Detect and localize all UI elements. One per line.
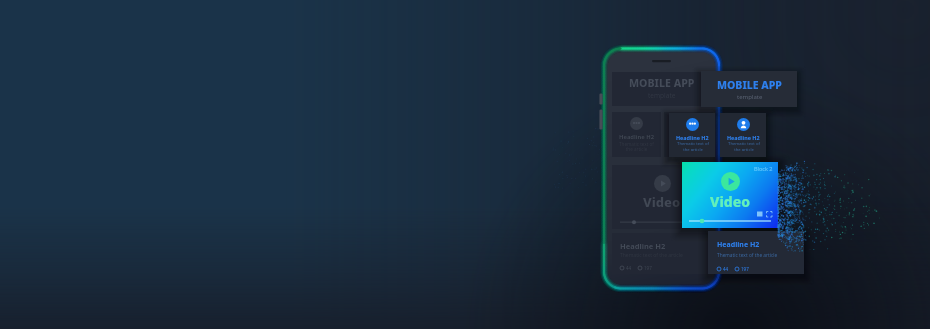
button[interactable]: MOBILE APP <box>612 72 712 106</box>
button[interactable]: Comments <box>669 113 715 157</box>
button[interactable]: Block 2 <box>682 162 778 228</box>
staticText: Thematic text of the article <box>677 141 709 152</box>
staticText: Thematic text of the article <box>728 141 760 152</box>
staticText: 44 <box>723 266 729 272</box>
staticText: Headline H2 <box>620 241 666 251</box>
staticText: Headline H2 <box>717 240 760 250</box>
button[interactable]: Video <box>612 165 712 229</box>
staticText: Video <box>710 192 750 211</box>
other: Comments <box>686 118 699 131</box>
staticText: Headline H2 <box>676 134 709 141</box>
staticText: Headline H2 <box>671 133 706 141</box>
staticText: template <box>648 91 676 100</box>
staticText: Block 2 <box>754 165 773 172</box>
other: Fullscreen <box>757 210 773 218</box>
button[interactable]: Profile <box>720 113 766 157</box>
staticText: Thematic text of the article <box>717 252 778 259</box>
staticText: Headline H2 <box>619 133 654 141</box>
staticText: MOBILE APP <box>629 76 695 90</box>
staticText: Headline H2 <box>727 134 760 141</box>
button[interactable]: Headline H2 <box>664 112 713 157</box>
button[interactable]: Headline H2 <box>708 231 804 274</box>
other: Profile <box>737 118 750 131</box>
staticText: 44 <box>626 265 632 271</box>
staticText: Video <box>643 193 681 211</box>
other: Play video <box>721 172 740 191</box>
staticText: MOBILE APP <box>717 78 782 92</box>
staticText: Thematic text of the article <box>671 141 706 153</box>
button[interactable]: Headline H2 <box>612 233 712 274</box>
staticText: 197 <box>644 265 652 271</box>
button[interactable]: Headline H2 <box>612 112 661 157</box>
staticText: template <box>737 93 763 101</box>
button[interactable]: MOBILE APP <box>701 71 797 107</box>
staticText: 197 <box>741 266 749 272</box>
